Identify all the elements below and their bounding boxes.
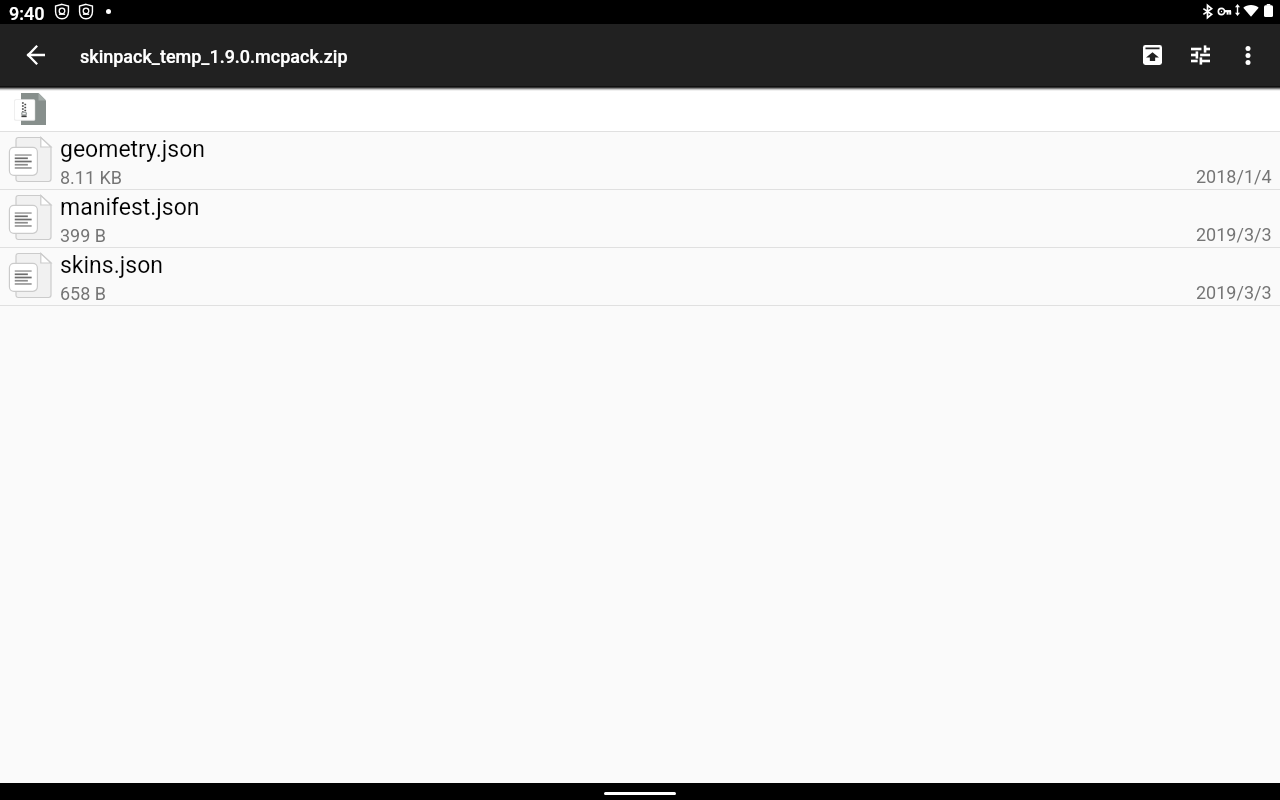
staticText: 2019/3/3: [1196, 282, 1272, 303]
staticText: manifest.json: [60, 194, 200, 221]
staticText: skinpack_temp_1.9.0.mcpack.zip: [80, 46, 348, 67]
button[interactable]: manifest.json: [0, 190, 1280, 248]
staticText: 2018/1/4: [1196, 166, 1272, 187]
staticText: 8.11 KB: [60, 167, 123, 188]
staticText: 658 B: [60, 283, 107, 304]
button[interactable]: More options: [1224, 31, 1272, 79]
staticText: skins.json: [60, 252, 163, 279]
button[interactable]: Sort: [1176, 31, 1224, 79]
staticText: geometry.json: [60, 136, 206, 163]
button[interactable]: geometry.json: [0, 132, 1280, 190]
staticText: 9:40: [9, 3, 45, 24]
button[interactable]: Extract: [1128, 31, 1176, 79]
staticText: 2019/3/3: [1196, 224, 1272, 245]
staticText: 399 B: [60, 225, 107, 246]
button[interactable]: Navigate up: [12, 31, 60, 79]
button[interactable]: skinpack_temp_1.9.0.mcpack.zip: [9, 86, 51, 132]
button[interactable]: skins.json: [0, 248, 1280, 306]
